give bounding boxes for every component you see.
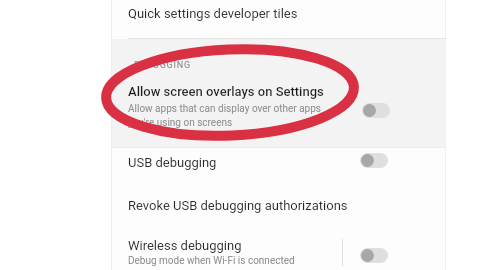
button[interactable]: Revoke USB debugging authorizations	[112, 192, 446, 228]
staticText: DEBUGGING	[134, 60, 191, 71]
staticText: you're using on screens	[128, 117, 233, 129]
button[interactable]: USB debugging	[112, 150, 446, 190]
staticText: Allow apps that can display over other a…	[128, 103, 321, 115]
staticText: Allow screen overlays on Settings	[128, 84, 324, 99]
button[interactable]: Wireless debugging	[112, 232, 446, 270]
button[interactable]	[360, 248, 388, 263]
button[interactable]: Quick settings developer tiles	[112, 0, 446, 38]
button[interactable]	[362, 103, 390, 118]
staticText: Debug mode when Wi-Fi is connected	[128, 255, 295, 267]
button[interactable]: Allow screen overlays on Settings	[112, 78, 446, 147]
staticText: Quick settings developer tiles	[128, 6, 298, 21]
staticText: Revoke USB debugging authorizations	[128, 198, 348, 213]
staticText: Wireless debugging	[128, 238, 242, 253]
staticText: USB debugging	[128, 155, 217, 170]
button[interactable]	[360, 153, 388, 168]
